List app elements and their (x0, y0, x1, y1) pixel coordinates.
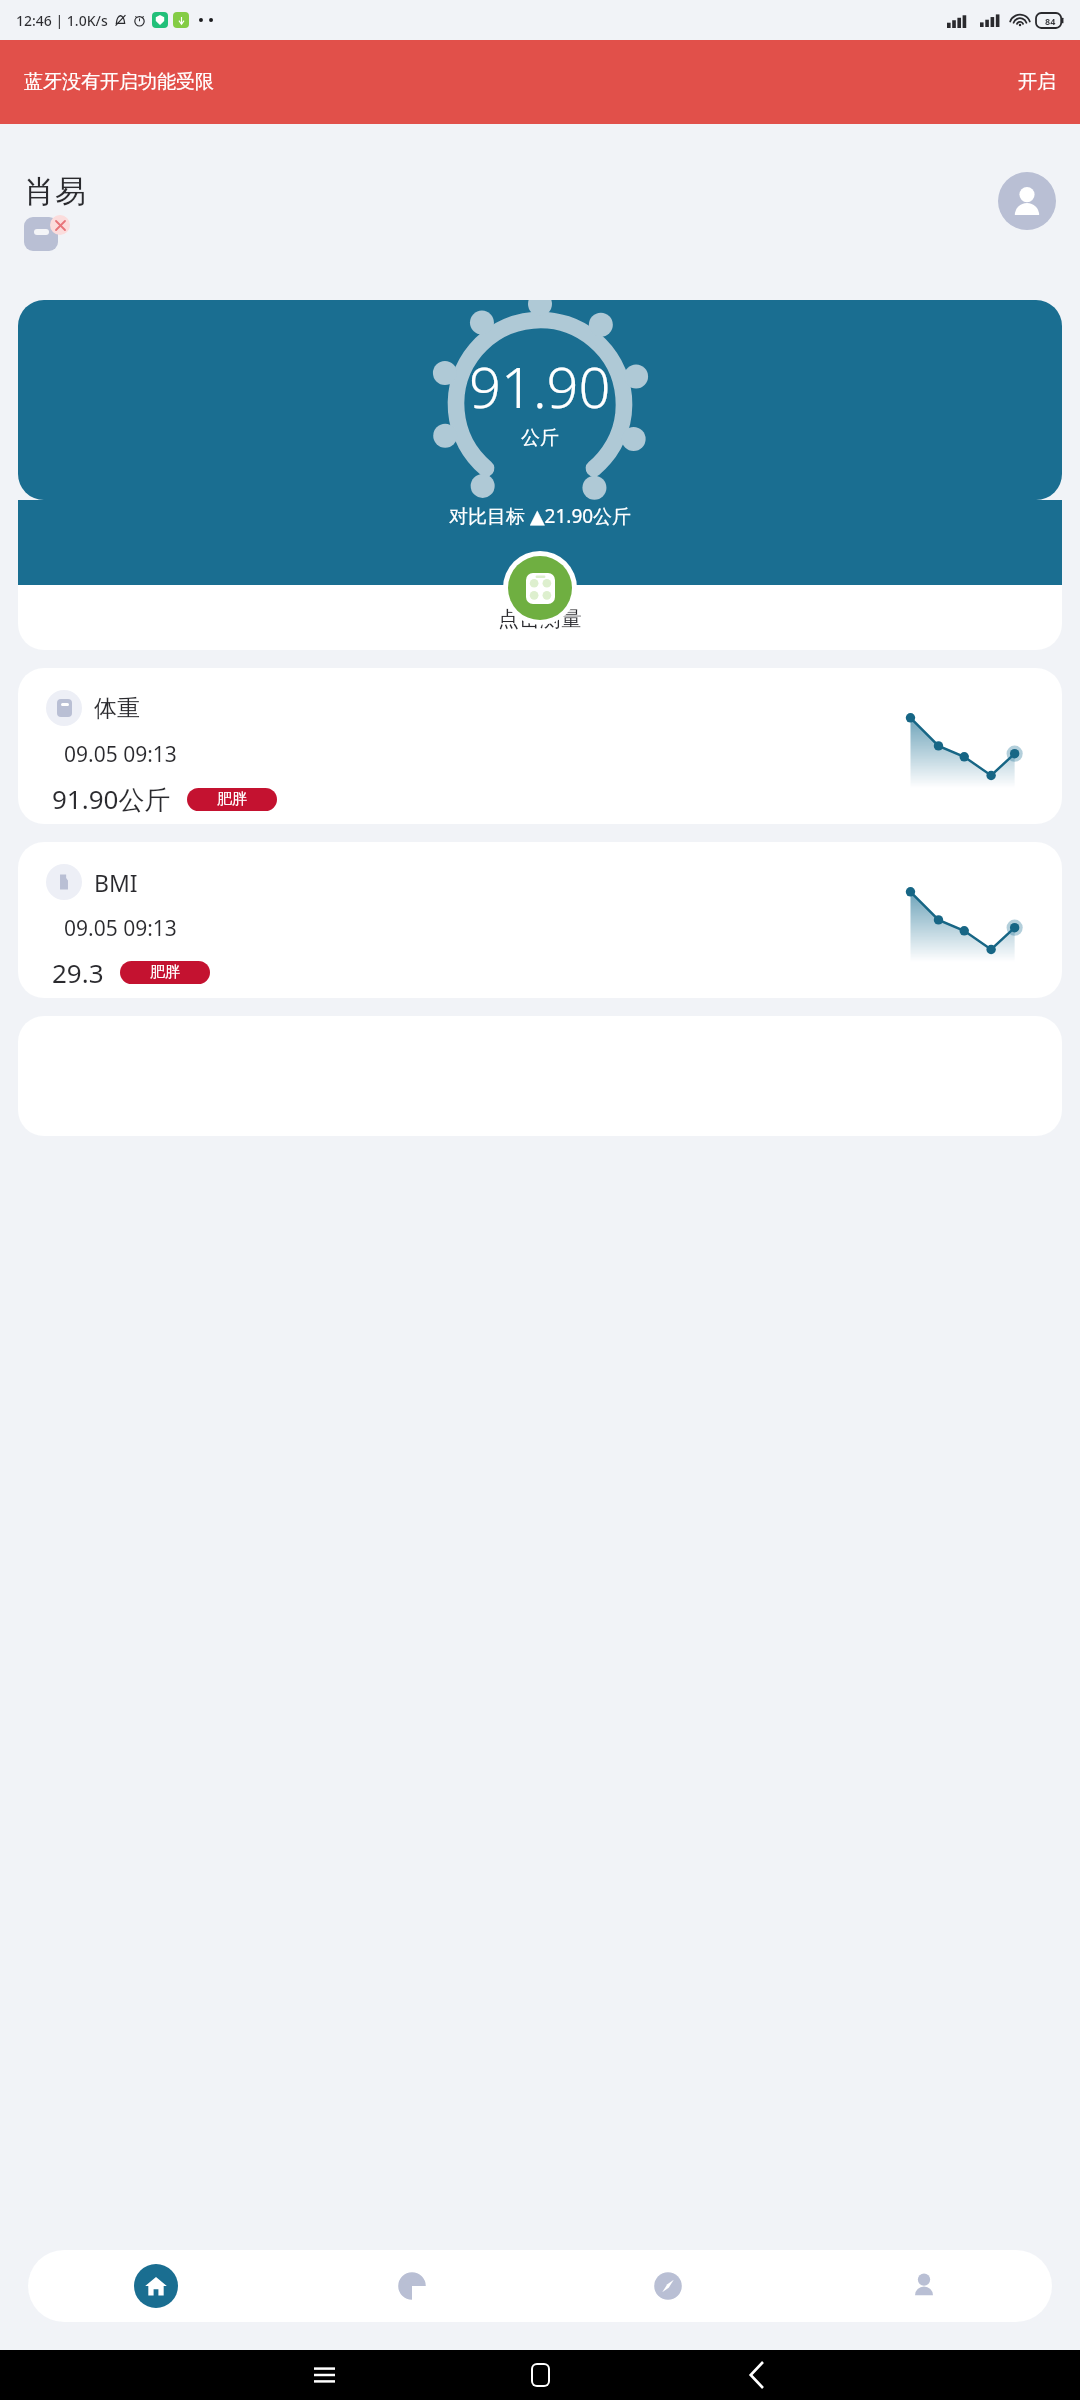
button[interactable]: 统计 (284, 2250, 540, 2322)
staticText: 开启 (1018, 70, 1056, 94)
staticText: 体重 (94, 694, 140, 723)
staticText: BMI (94, 867, 138, 898)
staticText: 肥胖 (150, 963, 180, 982)
staticText: 91.90 (469, 348, 611, 424)
button[interactable]: 设备未连接 (24, 215, 70, 251)
button[interactable]: 我的 (796, 2250, 1052, 2322)
button[interactable]: 体重 (18, 668, 1062, 824)
button[interactable]: 点击测量 (508, 556, 572, 620)
staticText: 肥胖 (217, 790, 247, 809)
staticText: 公斤 (521, 426, 559, 450)
staticText: 84 (1045, 15, 1056, 27)
staticText: 09.05 09:13 (64, 740, 177, 769)
staticText: 09.05 09:13 (64, 914, 177, 943)
button[interactable]: 个人资料 (998, 172, 1056, 230)
staticText: 点击测量 (498, 606, 582, 632)
staticText: 对比目标 ▲21.90公斤 (449, 503, 632, 529)
staticText: 12:46 | 1.0K/s (16, 11, 108, 30)
button[interactable]: 发现 (540, 2250, 796, 2322)
button[interactable]: BMI (18, 842, 1062, 998)
button[interactable]: 蓝牙没有开启功能受限 (0, 40, 1080, 124)
button[interactable]: 91.90 (18, 300, 1062, 500)
staticText: 蓝牙没有开启功能受限 (24, 70, 214, 94)
button[interactable]: 首页 (28, 2250, 284, 2322)
staticText: 29.3 (52, 955, 104, 990)
staticText: 肖易 (24, 172, 86, 211)
staticText: 91.90公斤 (52, 781, 171, 817)
